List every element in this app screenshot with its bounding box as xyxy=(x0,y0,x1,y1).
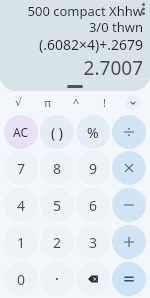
staticText: 6 xyxy=(89,196,98,215)
staticText: 4 xyxy=(17,196,26,215)
button[interactable]: ^ xyxy=(62,91,90,113)
button[interactable]: ! xyxy=(90,91,118,113)
button[interactable]: 0 xyxy=(4,262,38,296)
button[interactable]: π xyxy=(33,91,62,113)
button[interactable]: Backspace xyxy=(76,262,110,296)
button[interactable]: Multiply xyxy=(112,151,146,185)
button[interactable]: Expand history xyxy=(67,85,83,88)
button[interactable]: 3 xyxy=(76,225,110,259)
button[interactable]: Decimal point xyxy=(40,262,74,296)
button[interactable]: ( ) xyxy=(40,115,74,149)
staticText: ! xyxy=(103,95,106,110)
staticText: AC xyxy=(13,124,29,140)
button[interactable]: AC xyxy=(4,115,38,149)
button[interactable]: 8 xyxy=(40,151,74,185)
staticText: 7 xyxy=(17,159,26,178)
staticText: ( ) xyxy=(51,123,64,142)
staticText: 8 xyxy=(53,159,62,178)
staticText: 9 xyxy=(89,159,98,178)
button[interactable]: More functions xyxy=(125,95,140,110)
button[interactable]: 9 xyxy=(76,151,110,185)
staticText: π xyxy=(44,95,52,110)
button[interactable]: Divide xyxy=(112,115,146,149)
button[interactable]: Minus xyxy=(112,188,146,222)
button[interactable]: √ xyxy=(4,91,33,113)
staticText: (.6082×4)+.2679 xyxy=(6,35,143,54)
button[interactable]: Plus xyxy=(112,225,146,259)
button[interactable]: % xyxy=(76,115,110,149)
button[interactable]: 2 xyxy=(40,225,74,259)
staticText: 3/0 thwn xyxy=(6,18,143,36)
staticText: % xyxy=(87,123,99,142)
staticText: 500 compact Xhhw xyxy=(6,2,143,20)
staticText: 2 xyxy=(53,233,62,252)
button[interactable]: More options xyxy=(136,0,150,18)
staticText: 3 xyxy=(89,233,98,252)
staticText: ^ xyxy=(73,95,80,110)
staticText: √ xyxy=(15,96,23,109)
button[interactable]: 1 xyxy=(4,225,38,259)
button[interactable]: 7 xyxy=(4,151,38,185)
button[interactable]: 5 xyxy=(40,188,74,222)
staticText: 5 xyxy=(53,196,62,215)
button[interactable]: Equals xyxy=(112,262,146,296)
staticText: 2.7007 xyxy=(6,55,143,81)
staticText: 0 xyxy=(17,270,26,289)
button[interactable]: 4 xyxy=(4,188,38,222)
staticText: 1 xyxy=(17,233,26,252)
button[interactable]: 6 xyxy=(76,188,110,222)
